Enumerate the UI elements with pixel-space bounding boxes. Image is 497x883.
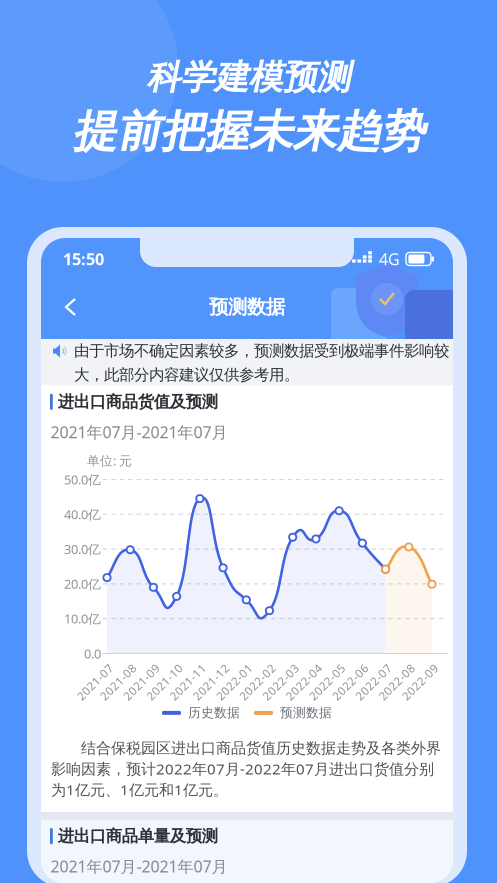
button[interactable]: 返回: [53, 289, 89, 325]
staticText: 结合保税园区进出口商品货值历史数据走势及各类外界影响因素，预计2022年07月-…: [51, 739, 441, 800]
staticText: 20.0亿: [64, 575, 101, 592]
staticText: 单位: 元: [87, 452, 132, 469]
staticText: 2021-10: [142, 674, 188, 690]
staticText: 2021-11: [165, 674, 211, 690]
staticText: 2021-08: [95, 674, 141, 690]
staticText: 进出口商品单量及预测: [58, 826, 218, 846]
staticText: 30.0亿: [64, 540, 101, 558]
staticText: 2022-08: [374, 674, 420, 690]
staticText: 50.0亿: [64, 471, 101, 488]
staticText: 2022-03: [258, 674, 304, 690]
staticText: 2022-04: [281, 674, 327, 690]
staticText: 由于市场不确定因素较多，预测数据受到极端事件影响较大，此部分内容建议仅供参考用。: [74, 341, 449, 385]
staticText: 进出口商品货值及预测: [58, 392, 218, 412]
staticText: 2022-06: [327, 674, 373, 690]
staticText: 2021年07月-2021年07月: [50, 421, 227, 443]
staticText: 10.0亿: [64, 610, 101, 627]
staticText: 提前把握未来趋势: [72, 104, 424, 159]
staticText: 40.0亿: [64, 505, 101, 523]
staticText: 15:50: [63, 248, 104, 270]
staticText: 2021-12: [188, 674, 234, 690]
staticText: 4G: [379, 248, 400, 270]
staticText: 2022-05: [304, 674, 350, 690]
staticText: 2021-07: [72, 674, 118, 690]
staticText: 2021年07月-2021年07月: [50, 855, 227, 877]
staticText: 2022-09: [397, 674, 443, 690]
staticText: 2022-02: [234, 674, 280, 690]
staticText: 预测数据: [209, 295, 285, 319]
staticText: 科学建模预测: [146, 56, 350, 99]
staticText: 2022-07: [351, 674, 397, 690]
staticText: 2022-01: [211, 674, 257, 690]
staticText: 2021-09: [118, 674, 164, 690]
staticText: 历史数据: [188, 705, 240, 721]
staticText: 0.0: [84, 645, 101, 662]
staticText: 预测数据: [280, 705, 332, 721]
